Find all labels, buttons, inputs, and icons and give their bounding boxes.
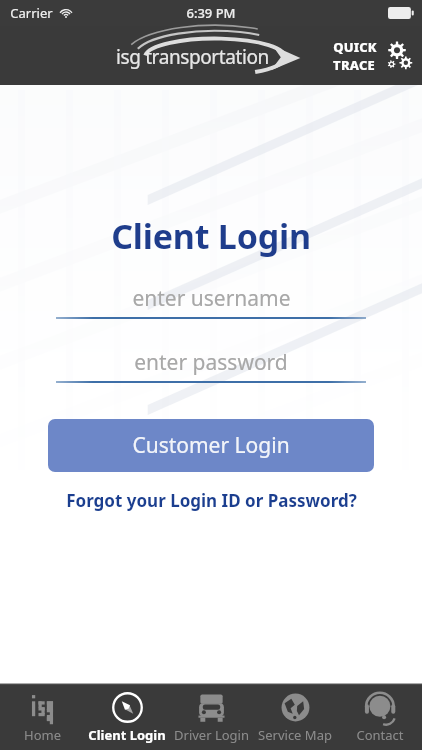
staticText: enter password bbox=[134, 348, 288, 377]
staticText: QUICK bbox=[333, 38, 377, 56]
button[interactable]: Forgot your Login ID or Password? bbox=[0, 489, 422, 512]
button[interactable]: Contact bbox=[338, 684, 422, 750]
button[interactable]: enter username bbox=[56, 283, 366, 319]
staticText: Client Login bbox=[111, 213, 311, 259]
button[interactable]: isg transportation bbox=[110, 33, 285, 79]
staticText: Driver Login bbox=[174, 726, 249, 744]
button[interactable]: Service Map bbox=[253, 684, 337, 750]
button[interactable]: Customer Login bbox=[48, 419, 374, 472]
button[interactable]: Home bbox=[0, 684, 84, 750]
staticText: Customer Login bbox=[132, 431, 290, 460]
button[interactable]: Quick Trace bbox=[333, 38, 414, 74]
staticText: Service Map bbox=[258, 726, 332, 744]
button[interactable]: Client Login bbox=[85, 684, 169, 750]
button[interactable]: enter password bbox=[56, 347, 366, 383]
staticText: 6:39 PM bbox=[186, 4, 236, 22]
staticText: Client Login bbox=[88, 726, 166, 744]
staticText: Home bbox=[24, 726, 61, 744]
staticText: Contact bbox=[356, 726, 404, 744]
staticText: isg transportation bbox=[116, 44, 269, 70]
staticText: Forgot your Login ID or Password? bbox=[66, 489, 357, 512]
staticText: enter username bbox=[132, 284, 291, 313]
staticText: TRACE bbox=[333, 56, 375, 74]
staticText: Carrier bbox=[10, 4, 53, 22]
button[interactable]: Driver Login bbox=[169, 684, 253, 750]
